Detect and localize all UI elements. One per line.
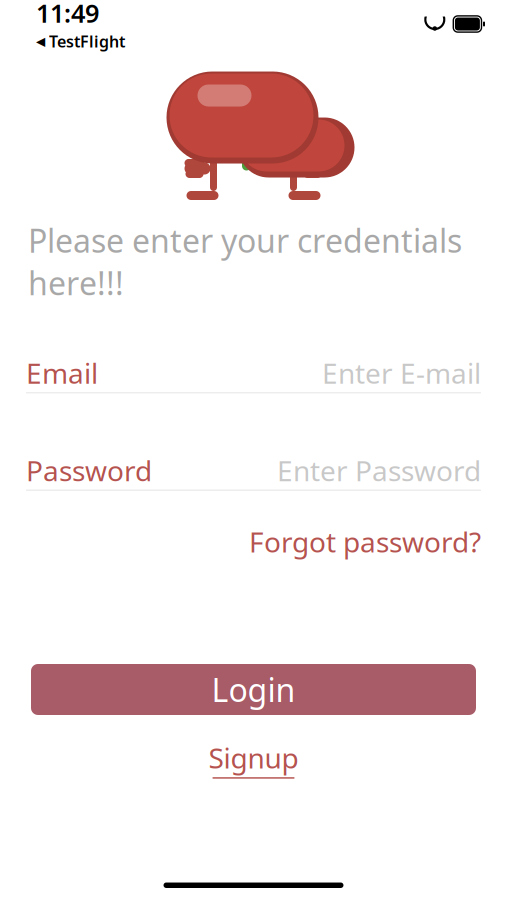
- button[interactable]: Signup: [208, 733, 298, 785]
- staticText: Enter Password: [277, 452, 481, 489]
- button[interactable]: Forgot password?: [249, 517, 481, 566]
- staticText: Login: [211, 668, 295, 711]
- staticText: Enter E-mail: [322, 354, 481, 392]
- staticText: Forgot password?: [249, 523, 481, 560]
- staticText: 11:49: [36, 0, 99, 30]
- staticText: Email: [26, 354, 98, 392]
- staticText: TestFlight: [49, 31, 125, 52]
- staticText: ◀: [36, 34, 45, 48]
- staticText: Signup: [208, 739, 298, 776]
- button[interactable]: Login: [31, 664, 476, 715]
- staticText: Please enter your credentials here!!!: [28, 219, 462, 304]
- staticText: Password: [26, 452, 152, 489]
